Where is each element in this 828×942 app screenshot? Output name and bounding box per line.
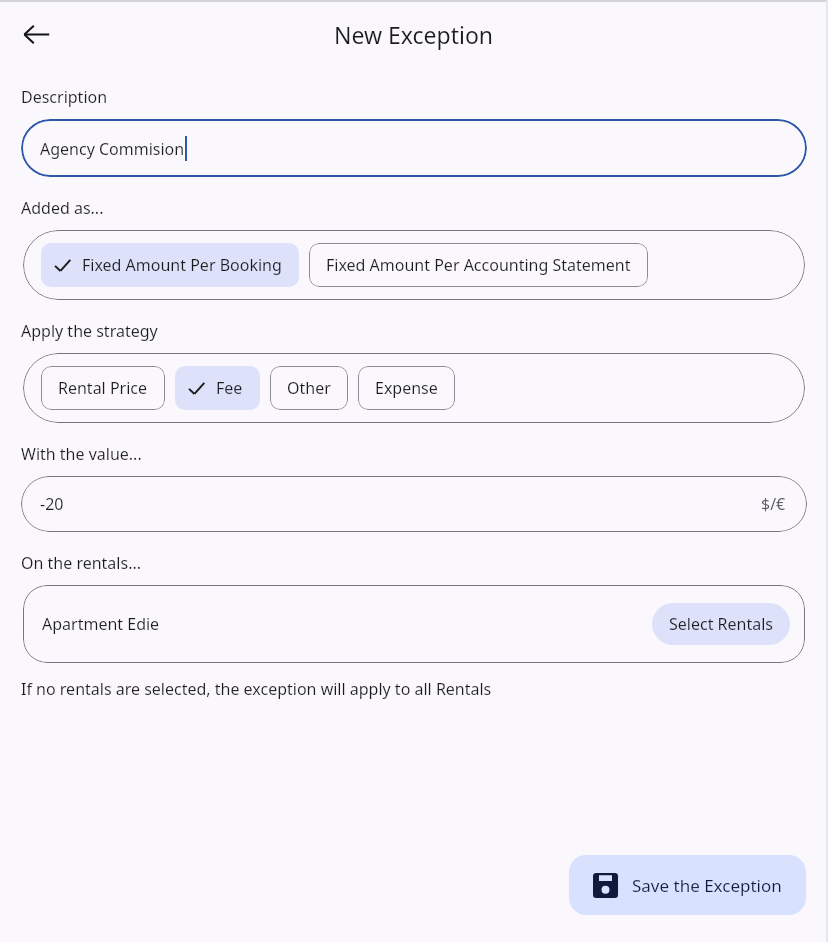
button[interactable]: Fixed Amount Per Accounting Statement: [309, 243, 648, 287]
button[interactable]: Expense: [358, 366, 455, 410]
button[interactable]: Back: [12, 10, 60, 58]
staticText: New Exception: [334, 19, 494, 50]
button[interactable]: Save the Exception: [569, 855, 806, 915]
staticText: Apartment Edie: [42, 613, 160, 635]
button[interactable]: Other: [270, 366, 348, 410]
staticText: Other: [287, 377, 331, 399]
button[interactable]: Rental Price: [41, 366, 165, 410]
staticText: On the rentals...: [21, 552, 142, 574]
staticText: Apply the strategy: [21, 320, 158, 342]
staticText: Rental Price: [58, 377, 148, 399]
staticText: Save the Exception: [632, 874, 782, 897]
staticText: Expense: [375, 377, 438, 399]
staticText: Fixed Amount Per Accounting Statement: [326, 254, 631, 276]
staticText: Agency Commision: [40, 138, 185, 160]
button[interactable]: -20: [21, 476, 807, 532]
staticText: $/€: [761, 493, 786, 515]
button[interactable]: Agency Commision: [21, 119, 807, 177]
button[interactable]: Select Rentals: [652, 603, 790, 645]
staticText: Fee: [216, 377, 243, 399]
staticText: Added as...: [21, 197, 104, 219]
staticText: If no rentals are selected, the exceptio…: [21, 678, 492, 700]
button[interactable]: Fixed Amount Per Booking: [41, 243, 299, 287]
button[interactable]: Fee: [175, 366, 260, 410]
staticText: With the value...: [21, 443, 142, 465]
staticText: -20: [40, 493, 64, 515]
staticText: Description: [21, 86, 108, 108]
staticText: Select Rentals: [669, 613, 773, 635]
staticText: Fixed Amount Per Booking: [82, 254, 282, 276]
